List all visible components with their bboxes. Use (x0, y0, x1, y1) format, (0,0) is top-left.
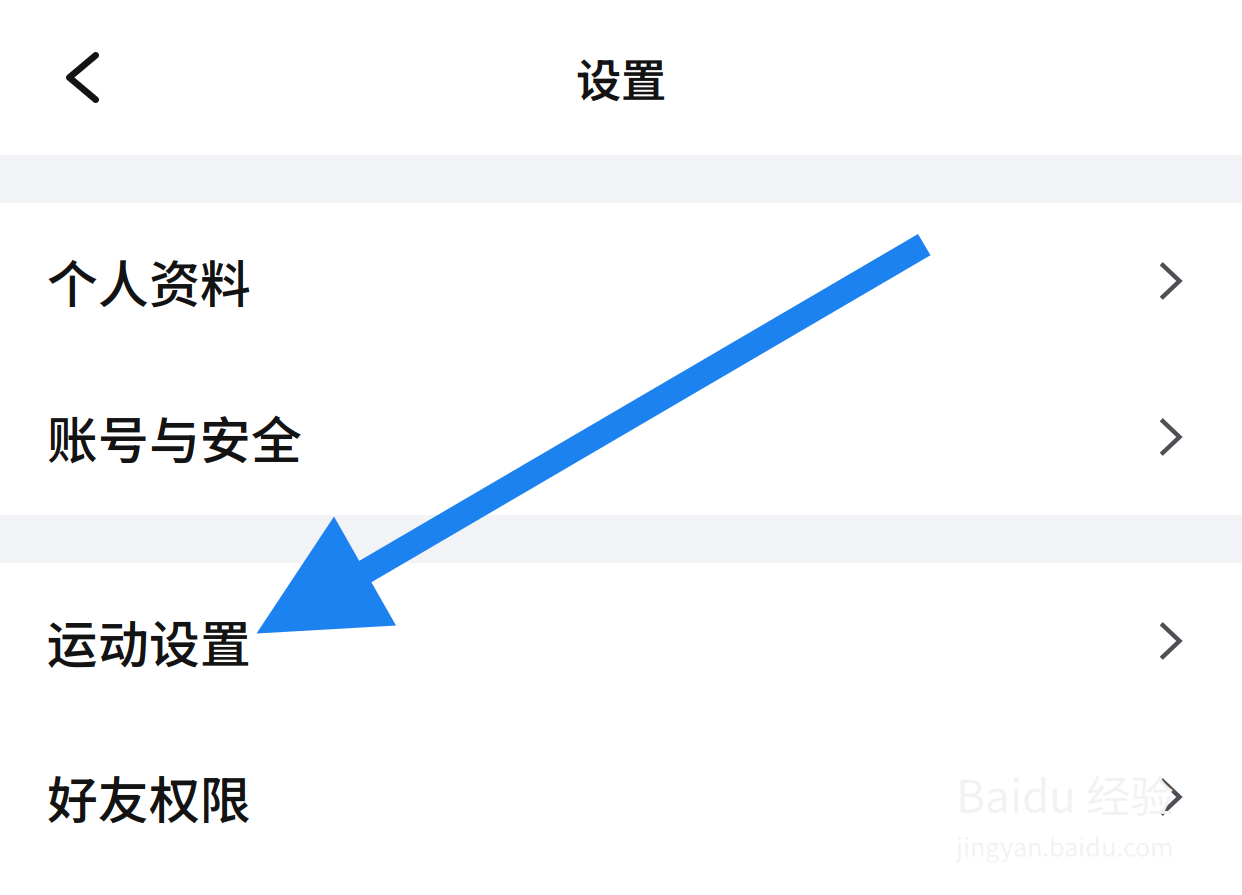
button[interactable]: 返回 (0, 0, 144, 155)
button[interactable]: 账号与安全 (0, 359, 1242, 515)
staticText: 运动设置 (47, 604, 251, 678)
staticText: jingyan.baidu.com (956, 827, 1173, 864)
button[interactable]: 个人资料 (0, 203, 1242, 359)
staticText: 账号与安全 (47, 400, 302, 474)
staticText: 个人资料 (47, 244, 251, 318)
staticText: Baidu 经验 (956, 762, 1174, 825)
button[interactable]: 好友权限 (0, 719, 1242, 875)
staticText: 好友权限 (47, 760, 251, 834)
button[interactable]: 运动设置 (0, 563, 1242, 719)
staticText: 设置 (576, 45, 666, 110)
